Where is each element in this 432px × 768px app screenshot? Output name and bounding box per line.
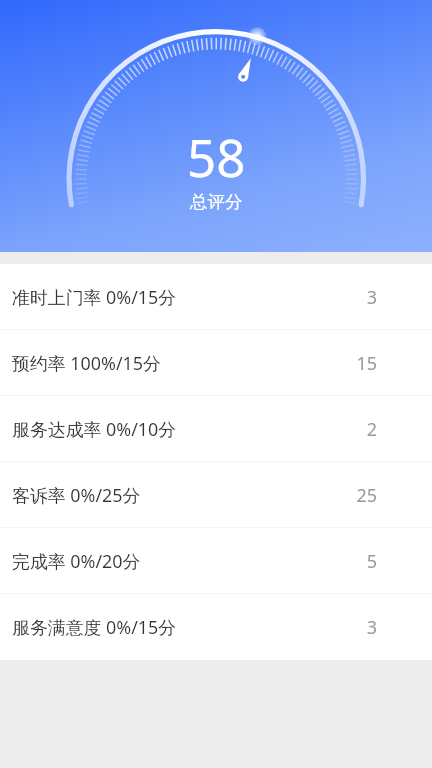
staticText: 预约率 100%/15分: [12, 351, 161, 375]
staticText: 完成率 0%/20分: [12, 549, 141, 573]
staticText: 客诉率 0%/25分: [12, 483, 141, 507]
staticText: 总评分: [190, 191, 243, 213]
button[interactable]: 服务满意度 0%/15分: [0, 594, 432, 660]
staticText: 2: [366, 417, 377, 442]
button[interactable]: 准时上门率 0%/15分: [0, 264, 432, 330]
button[interactable]: 完成率 0%/20分: [0, 528, 432, 594]
staticText: 服务达成率 0%/10分: [12, 417, 177, 441]
staticText: 15: [356, 351, 377, 376]
button[interactable]: 客诉率 0%/25分: [0, 462, 432, 528]
button[interactable]: 预约率 100%/15分: [0, 330, 432, 396]
staticText: 准时上门率 0%/15分: [12, 285, 177, 309]
staticText: 服务满意度 0%/15分: [12, 615, 177, 639]
staticText: 3: [366, 615, 377, 640]
staticText: 58: [187, 122, 246, 191]
staticText: 25: [356, 483, 377, 508]
staticText: 5: [366, 549, 377, 574]
staticText: 3: [366, 285, 377, 310]
button[interactable]: 服务达成率 0%/10分: [0, 396, 432, 462]
